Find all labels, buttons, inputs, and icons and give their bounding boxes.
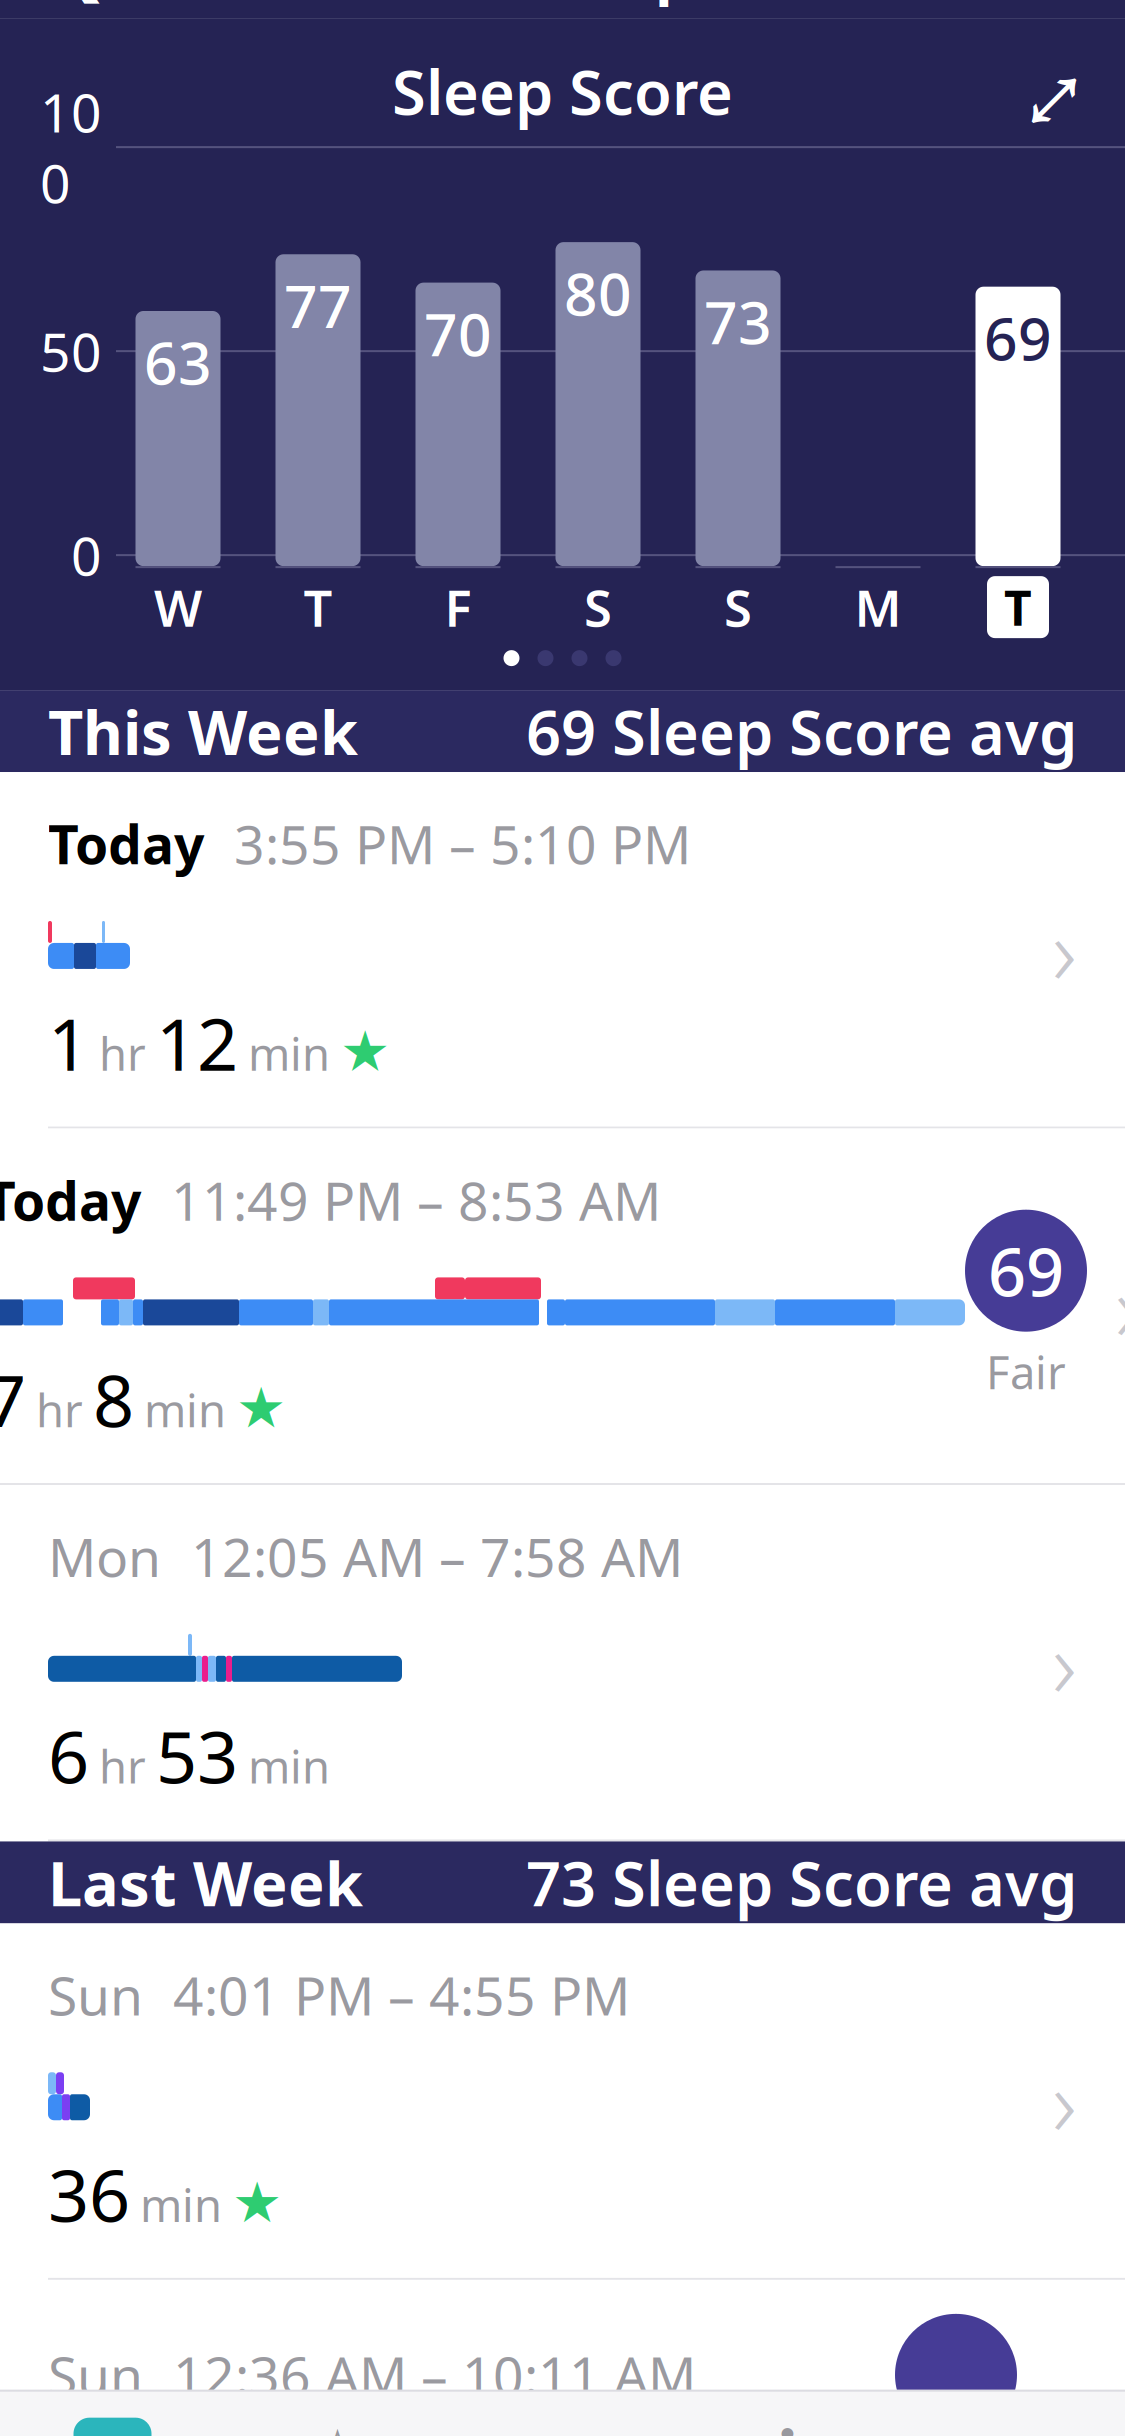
staticText: 80: [564, 254, 632, 332]
staticText: Fair: [986, 1342, 1066, 1402]
staticText: 69: [984, 299, 1052, 377]
staticText: 1: [48, 995, 89, 1091]
staticText: ›: [1052, 1600, 1077, 1724]
staticText: 6: [48, 1708, 89, 1803]
staticText: S: [584, 573, 612, 641]
staticText: W: [154, 573, 202, 641]
staticText: 8: [93, 1351, 134, 1447]
button[interactable]: Today: [0, 772, 1125, 1128]
staticText: 7: [0, 1351, 26, 1447]
button[interactable]: Mon: [0, 1485, 1125, 1841]
staticText: This Week: [48, 690, 358, 772]
staticText: 100: [40, 76, 102, 218]
staticText: 12: [156, 995, 238, 1091]
staticText: ★: [236, 1376, 286, 1440]
staticText: min: [248, 1023, 330, 1083]
button[interactable]: ♟: [675, 2414, 900, 2436]
staticText: ❮: [52, 0, 110, 2]
staticText: 69: [988, 1226, 1064, 1315]
staticText: 0: [71, 520, 102, 590]
staticText: hr: [99, 1736, 146, 1796]
staticText: T: [1004, 575, 1032, 639]
staticText: 4:01 PM – 4:55 PM: [173, 1959, 630, 2030]
staticText: 50: [40, 316, 102, 386]
staticText: ♟: [754, 2414, 821, 2436]
staticText: M: [854, 573, 901, 641]
staticText: 11:49 PM – 8:53 AM: [171, 1165, 661, 1235]
staticText: 53: [156, 1708, 238, 1803]
staticText: 12:36 AM – 10:11 AM: [173, 2339, 696, 2410]
staticText: hr: [99, 1023, 146, 1083]
staticText: Sun: [48, 2339, 143, 2410]
staticText: Sleep Score: [392, 50, 733, 132]
staticText: Today: [48, 808, 204, 879]
staticText: +: [1023, 0, 1079, 29]
staticText: S: [724, 573, 752, 641]
staticText: ⤢: [1021, 3, 1087, 179]
staticText: 77: [284, 266, 352, 344]
button[interactable]: Sun: [0, 1923, 1125, 2280]
staticText: 63: [144, 323, 212, 401]
staticText: 36: [48, 2146, 130, 2242]
staticText: 3:55 PM – 5:10 PM: [234, 808, 691, 879]
staticText: Mon: [48, 1521, 161, 1592]
staticText: T: [303, 573, 332, 641]
staticText: Sun: [48, 1959, 143, 2030]
staticText: ›: [1052, 887, 1077, 1011]
staticText: min: [248, 1736, 330, 1796]
staticText: Last Week: [48, 1842, 363, 1923]
staticText: min: [140, 2174, 222, 2234]
staticText: ★: [232, 2171, 282, 2234]
staticText: min: [144, 1379, 226, 1440]
staticText: 70: [424, 295, 492, 372]
button[interactable]: Expand chart: [1009, 46, 1099, 136]
staticText: ›: [1052, 2039, 1077, 2163]
staticText: 73 Sleep Score avg: [526, 1842, 1077, 1923]
staticText: 12:05 AM – 7:58 AM: [191, 1521, 683, 1592]
button[interactable]: Today: [0, 1129, 1125, 1485]
staticText: Today: [0, 1165, 141, 1235]
staticText: F: [444, 573, 471, 641]
button[interactable]: ☆: [225, 2414, 450, 2436]
staticText: 73: [704, 282, 772, 360]
button[interactable]: Dashboard: [0, 2414, 225, 2436]
staticText: ☆: [304, 2414, 371, 2436]
staticText: ★: [340, 1019, 390, 1083]
staticText: Sleep: [514, 0, 697, 9]
button[interactable]: ❮: [26, 0, 304, 25]
staticText: 69 Sleep Score avg: [526, 690, 1077, 772]
staticText: ›: [1115, 1244, 1125, 1368]
staticText: hr: [36, 1379, 83, 1440]
